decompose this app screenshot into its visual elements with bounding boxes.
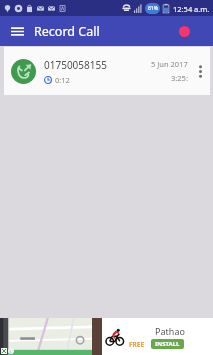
staticText: Record Call [34, 23, 100, 40]
staticText: FREE [129, 340, 145, 349]
staticText: INSTALL [155, 340, 180, 348]
button[interactable]: 01750058155 [4, 47, 210, 95]
staticText: 5 Jun 2017 [151, 59, 188, 69]
button[interactable]: Open navigation drawer [6, 20, 28, 42]
button[interactable]: More options [192, 51, 208, 91]
staticText: 61% [148, 5, 158, 12]
button[interactable]: Advertisement: Pathao, install [0, 318, 213, 355]
staticText: 01750058155 [44, 58, 107, 72]
staticText: i [10, 349, 12, 354]
staticText: 3:25: [171, 73, 188, 83]
button[interactable]: Start recording [174, 21, 194, 41]
staticText: 0:12 [55, 75, 70, 85]
staticText: 12:54 a.m. [173, 4, 210, 14]
staticText: Pathao [129, 325, 211, 337]
button[interactable]: INSTALL [155, 340, 180, 348]
